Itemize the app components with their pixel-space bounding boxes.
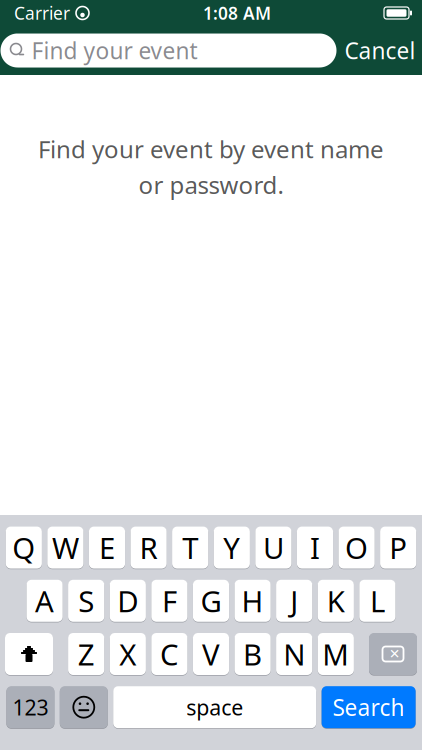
button[interactable]: U [255, 526, 291, 569]
button[interactable]: N [276, 632, 312, 676]
staticText: Find your event [31, 35, 197, 65]
button[interactable]: P [380, 526, 416, 569]
staticText: A [35, 581, 54, 620]
staticText: R [140, 528, 158, 567]
staticText: H [242, 581, 264, 620]
button[interactable]: Numbers [6, 686, 54, 729]
button[interactable]: W [47, 526, 83, 569]
button[interactable]: V [193, 632, 229, 676]
button[interactable]: A [26, 579, 63, 622]
staticText: V [202, 634, 220, 673]
staticText: Q [12, 528, 35, 567]
button[interactable]: O [338, 526, 375, 569]
button[interactable]: Cancel [336, 31, 422, 69]
staticText: Y [223, 528, 240, 567]
button[interactable]: K [318, 579, 354, 622]
button[interactable]: M [318, 632, 354, 676]
button[interactable]: T [172, 526, 208, 569]
staticText: O [345, 528, 368, 567]
staticText: Find your event by event name [38, 133, 384, 165]
button[interactable]: Q [6, 526, 42, 569]
staticText: D [117, 581, 138, 620]
staticText: M [322, 634, 349, 673]
button[interactable]: H [234, 579, 271, 622]
staticText: S [78, 581, 94, 620]
staticText: Z [78, 634, 95, 673]
button[interactable]: G [193, 579, 229, 622]
staticText: 1:08 AM [203, 1, 271, 24]
button[interactable]: I [297, 526, 333, 569]
button[interactable]: D [110, 579, 146, 622]
staticText: ✕ [389, 646, 400, 661]
staticText: space [186, 693, 243, 721]
staticText: E [99, 528, 115, 567]
button[interactable]: R [130, 526, 167, 569]
staticText: Carrier [14, 1, 70, 24]
button[interactable]: Emoji [60, 686, 108, 729]
staticText: K [327, 581, 345, 620]
staticText: C [160, 634, 179, 673]
button[interactable]: space [113, 686, 316, 729]
button[interactable]: Delete [369, 632, 417, 676]
button[interactable]: Y [214, 526, 250, 569]
staticText: W [52, 528, 79, 567]
button[interactable]: Shift [5, 632, 53, 676]
staticText: 123 [12, 693, 48, 721]
button[interactable]: X [110, 632, 146, 676]
staticText: I [310, 528, 320, 567]
staticText: Cancel [344, 35, 415, 65]
staticText: B [243, 634, 262, 673]
button[interactable]: L [359, 579, 395, 622]
staticText: F [162, 581, 177, 620]
staticText: N [283, 634, 305, 673]
staticText: T [182, 528, 198, 567]
staticText: L [370, 581, 385, 620]
staticText: G [200, 581, 221, 620]
staticText: X [119, 634, 136, 673]
button[interactable]: B [234, 632, 271, 676]
button[interactable]: C [151, 632, 187, 676]
button[interactable]: S [68, 579, 104, 622]
staticText: Search [333, 692, 405, 722]
button[interactable]: E [89, 526, 125, 569]
staticText: P [389, 528, 407, 567]
button[interactable]: Z [68, 632, 104, 676]
staticText: U [263, 528, 284, 567]
button[interactable]: J [276, 579, 312, 622]
staticText: or password. [138, 169, 283, 201]
button[interactable]: Search [322, 686, 416, 729]
button[interactable]: F [151, 579, 187, 622]
staticText: J [290, 581, 298, 620]
